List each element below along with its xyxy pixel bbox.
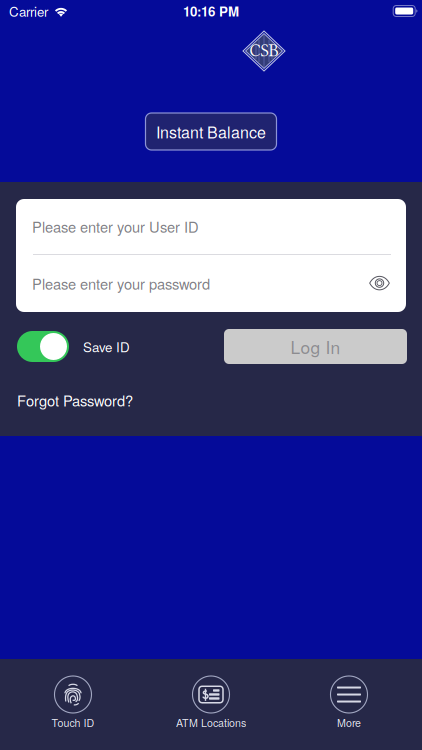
button[interactable]: More [280,676,418,730]
button[interactable]: Save ID [17,331,130,362]
button[interactable]: Show password [369,275,390,291]
button[interactable]: Forgot Password? [17,390,133,410]
staticText: Instant Balance [156,120,266,143]
button[interactable]: ATM Locations [142,676,280,730]
button[interactable]: Log In [224,329,407,364]
staticText: More [337,715,361,730]
staticText: Carrier [9,2,48,20]
staticText: Forgot Password? [17,390,133,410]
staticText: Log In [290,334,340,359]
staticText: CSB [249,41,278,61]
staticText: Please enter your User ID [32,216,199,237]
staticText: 10:16 PM [183,2,239,20]
button[interactable]: Touch ID [4,676,142,730]
staticText: ATM Locations [176,715,246,730]
staticText: Please enter your password [32,273,210,294]
staticText: Save ID [83,337,130,356]
button[interactable]: Instant Balance [145,113,276,150]
staticText: Touch ID [51,715,94,730]
